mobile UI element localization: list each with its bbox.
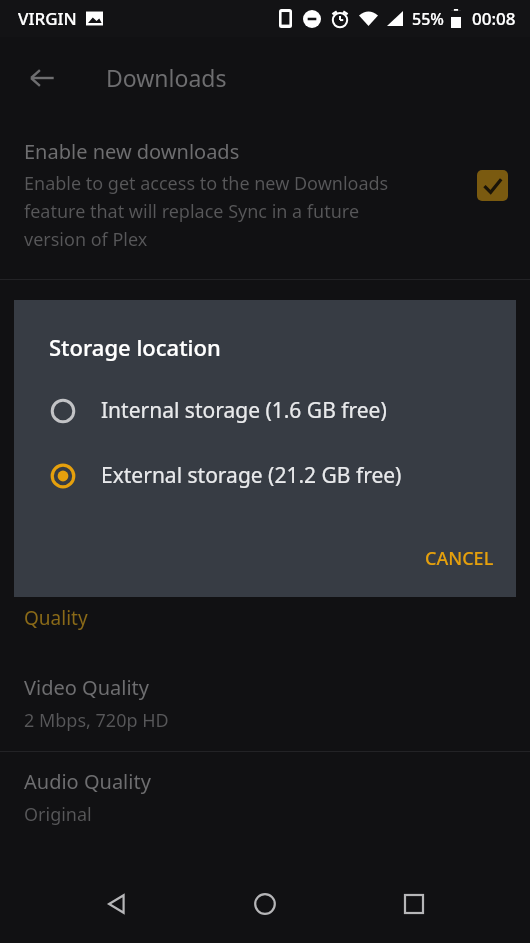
staticText: version of Plex xyxy=(24,227,148,252)
button[interactable]: CANCEL xyxy=(403,534,516,583)
staticText: Enable to get access to the new Download… xyxy=(24,171,389,196)
button[interactable]: Home xyxy=(233,872,297,936)
staticText: Internal storage (1.6 GB free) xyxy=(101,396,387,425)
staticText: feature that will replace Sync in a futu… xyxy=(24,199,360,224)
button[interactable]: Audio Quality xyxy=(0,752,530,845)
button[interactable]: Back xyxy=(85,872,149,936)
staticText: 00:08 xyxy=(472,7,516,30)
staticText: 55% xyxy=(412,8,444,30)
button[interactable]: Back xyxy=(14,50,70,106)
staticText: External storage (21.2 GB free) xyxy=(101,461,402,490)
button[interactable]: Recent apps xyxy=(382,872,446,936)
staticText: Storage location xyxy=(49,332,221,362)
button[interactable]: Internal storage (1.6 GB free) xyxy=(14,390,516,431)
button[interactable]: Enable new downloads xyxy=(0,138,530,252)
staticText: Audio Quality xyxy=(24,768,151,795)
staticText: Quality xyxy=(24,605,88,631)
button[interactable]: External storage (21.2 GB free) xyxy=(14,455,516,496)
button[interactable]: Video Quality xyxy=(0,658,530,751)
staticText: Enable new downloads xyxy=(24,138,240,165)
staticText: Downloads xyxy=(106,62,227,93)
staticText: CANCEL xyxy=(425,546,494,571)
staticText: VIRGIN xyxy=(18,7,77,30)
staticText: Video Quality xyxy=(24,674,149,701)
staticText: Original xyxy=(24,802,92,827)
staticText: 2 Mbps, 720p HD xyxy=(24,708,169,733)
